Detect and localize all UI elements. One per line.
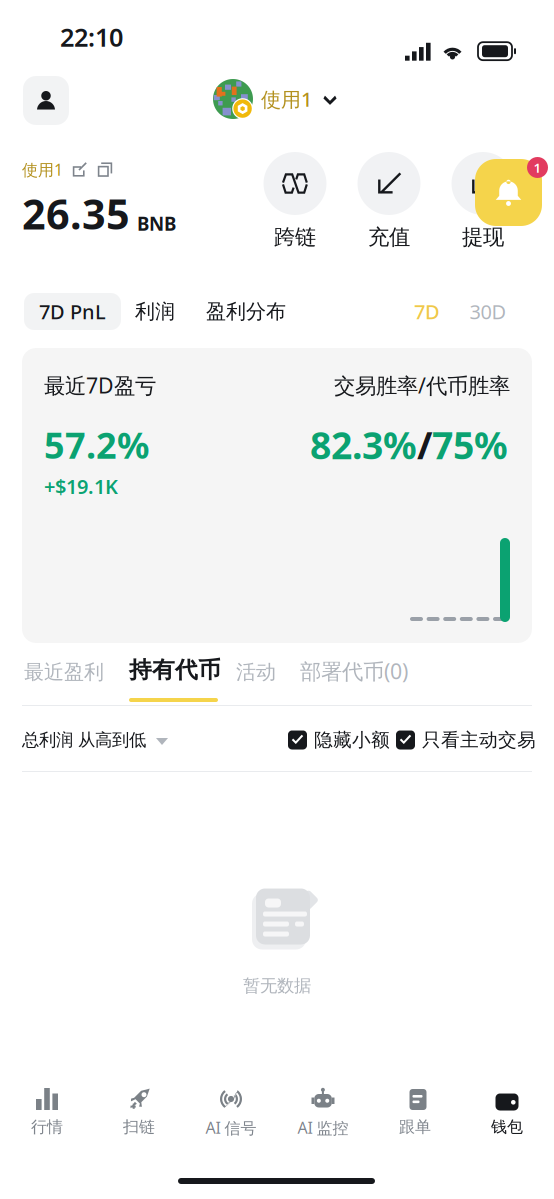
- button[interactable]: 持有代币: [129, 654, 221, 686]
- button[interactable]: 充值: [342, 152, 436, 248]
- staticText: 只看主动交易: [422, 728, 536, 751]
- staticText: 暂无数据: [243, 975, 311, 996]
- button[interactable]: 7D: [409, 293, 445, 330]
- staticText: 总利润 从高到低: [22, 729, 146, 751]
- staticText: 跟单: [399, 1117, 431, 1137]
- button[interactable]: 钱包: [461, 1088, 553, 1150]
- staticText: 持有代币: [129, 656, 221, 684]
- staticText: 钱包: [491, 1117, 523, 1137]
- staticText: 充值: [368, 224, 410, 250]
- staticText: 26.35: [22, 186, 130, 241]
- button[interactable]: 活动: [236, 656, 276, 688]
- staticText: /: [417, 420, 432, 470]
- button[interactable]: 30D: [463, 293, 513, 330]
- button[interactable]: 扫链: [93, 1088, 185, 1150]
- button[interactable]: 利润: [135, 293, 175, 330]
- button[interactable]: Notifications: [475, 157, 548, 227]
- button[interactable]: AI 信号: [185, 1088, 277, 1150]
- button[interactable]: 只看主动交易: [396, 723, 536, 757]
- button[interactable]: 跨链: [248, 152, 342, 248]
- staticText: 隐藏小额: [314, 728, 390, 751]
- button[interactable]: 总利润 从高到低: [22, 723, 168, 757]
- staticText: 提现: [462, 224, 504, 250]
- button[interactable]: 部署代币(0): [300, 655, 408, 687]
- button[interactable]: 使用1: [213, 79, 337, 119]
- button[interactable]: 盈利分布: [206, 293, 286, 330]
- staticText: 利润: [135, 299, 175, 324]
- staticText: 57.2%: [44, 421, 149, 469]
- button[interactable]: Rename wallet: [72, 162, 88, 178]
- button[interactable]: Copy address: [97, 162, 113, 178]
- staticText: 22:10: [60, 20, 123, 54]
- staticText: AI 信号: [205, 1117, 256, 1138]
- staticText: BNB: [137, 211, 176, 236]
- button[interactable]: 跟单: [369, 1088, 461, 1150]
- staticText: 跨链: [274, 224, 316, 250]
- staticText: 75%: [432, 420, 508, 470]
- staticText: 盈利分布: [206, 299, 286, 324]
- button[interactable]: 最近盈利: [24, 656, 104, 688]
- staticText: 最近7D盈亏: [44, 371, 156, 399]
- button[interactable]: 提现: [436, 152, 530, 248]
- staticText: 1: [533, 159, 541, 176]
- button[interactable]: 隐藏小额: [288, 723, 390, 757]
- button[interactable]: 7D PnL: [24, 293, 121, 330]
- staticText: 活动: [236, 660, 276, 684]
- staticText: 使用1: [261, 86, 312, 112]
- button[interactable]: Profile: [23, 76, 69, 125]
- staticText: 使用1: [22, 159, 63, 180]
- button[interactable]: 行情: [1, 1088, 93, 1150]
- staticText: +$19.1K: [44, 473, 118, 500]
- staticText: 交易胜率/代币胜率: [334, 371, 510, 399]
- button[interactable]: AI 监控: [277, 1088, 369, 1150]
- staticText: 82.3%: [310, 420, 417, 470]
- staticText: AI 监控: [297, 1117, 348, 1138]
- staticText: 扫链: [123, 1117, 155, 1137]
- staticText: 部署代币(0): [300, 657, 408, 685]
- staticText: 行情: [31, 1117, 63, 1137]
- staticText: 最近盈利: [24, 660, 104, 684]
- staticText: 30D: [469, 298, 506, 325]
- staticText: 7D: [414, 298, 440, 325]
- staticText: 7D PnL: [39, 298, 106, 325]
